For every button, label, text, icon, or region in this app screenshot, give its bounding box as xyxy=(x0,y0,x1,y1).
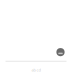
staticText: ab cd xyxy=(31,67,40,72)
button[interactable]: Remove xyxy=(56,48,65,56)
